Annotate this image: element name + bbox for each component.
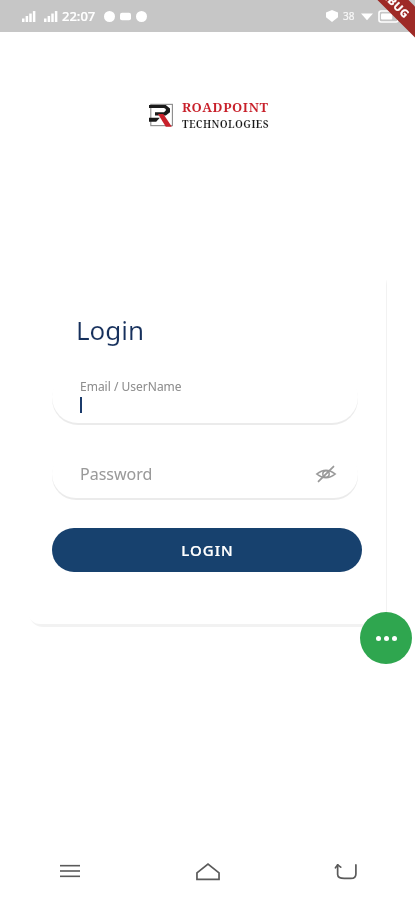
staticText: 22:07 bbox=[62, 7, 96, 25]
button[interactable]: Recent apps bbox=[0, 842, 139, 900]
staticText: TECHNOLOGIES bbox=[182, 117, 269, 131]
staticText: Login bbox=[76, 312, 145, 347]
staticText: Password bbox=[80, 463, 153, 485]
button[interactable]: Back bbox=[277, 842, 415, 900]
staticText: DEBUG bbox=[374, 0, 414, 21]
button[interactable]: Password bbox=[52, 450, 358, 498]
button[interactable]: LOGIN bbox=[52, 528, 362, 572]
button[interactable]: Show password bbox=[312, 460, 340, 488]
button[interactable]: Home bbox=[139, 842, 277, 900]
staticText: ROADPOINT bbox=[182, 98, 269, 116]
staticText: LOGIN bbox=[181, 540, 234, 560]
staticText: Email / UserName bbox=[80, 378, 182, 394]
staticText: 38 bbox=[343, 9, 355, 23]
button[interactable]: Email / UserName bbox=[52, 371, 358, 423]
button[interactable]: More options bbox=[360, 612, 412, 664]
